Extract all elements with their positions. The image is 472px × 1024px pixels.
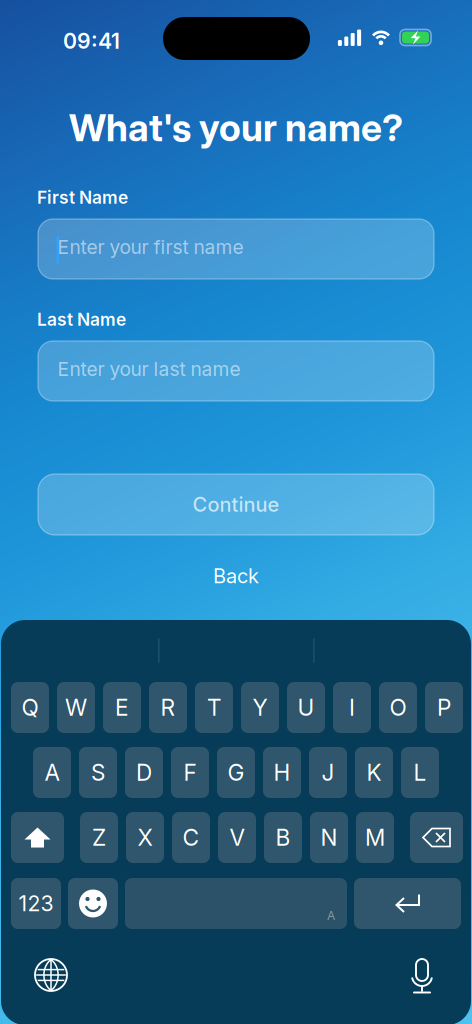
button[interactable]: Dictate	[400, 953, 444, 997]
button[interactable]: V	[218, 812, 256, 863]
button[interactable]: E	[103, 682, 141, 733]
button[interactable]: Emoji	[68, 878, 118, 929]
button[interactable]: Enter your first name	[38, 219, 434, 279]
staticText: L	[413, 759, 426, 786]
button[interactable]: Z	[80, 812, 118, 863]
button[interactable]: B	[264, 812, 302, 863]
button[interactable]: P	[425, 682, 463, 733]
staticText: T	[207, 694, 221, 721]
staticText: S	[91, 759, 105, 786]
staticText: G	[227, 759, 244, 786]
button[interactable]: M	[356, 812, 394, 863]
button[interactable]: 123	[11, 878, 61, 929]
staticText: U	[297, 694, 314, 721]
button[interactable]: Delete	[410, 812, 463, 863]
staticText: What's your name?	[69, 105, 403, 150]
button[interactable]: C	[172, 812, 210, 863]
button[interactable]: space	[125, 878, 347, 929]
button[interactable]: J	[309, 747, 347, 798]
button[interactable]: W	[57, 682, 95, 733]
staticText: O	[389, 694, 406, 721]
button[interactable]: G	[217, 747, 255, 798]
button[interactable]: L	[401, 747, 439, 798]
staticText: F	[183, 759, 196, 786]
staticText: P	[437, 694, 451, 721]
staticText: H	[273, 759, 290, 786]
button[interactable]: K	[355, 747, 393, 798]
staticText: First Name	[37, 187, 128, 208]
staticText: I	[349, 694, 355, 721]
button[interactable]: U	[287, 682, 325, 733]
staticText: B	[275, 824, 290, 851]
staticText: 09:41	[63, 28, 120, 54]
button[interactable]: A	[33, 747, 71, 798]
button[interactable]: D	[125, 747, 163, 798]
staticText: Enter your last name	[57, 357, 240, 381]
button[interactable]: Y	[241, 682, 279, 733]
button[interactable]: Continue	[38, 474, 434, 535]
staticText: Back	[213, 564, 259, 588]
staticText: A	[44, 759, 59, 786]
staticText: K	[366, 759, 381, 786]
staticText: Last Name	[37, 309, 126, 330]
staticText: C	[182, 824, 199, 851]
staticText: 123	[18, 891, 53, 916]
button[interactable]: N	[310, 812, 348, 863]
button[interactable]: S	[79, 747, 117, 798]
staticText: Q	[21, 694, 38, 721]
staticText: N	[320, 824, 337, 851]
staticText: R	[160, 694, 175, 721]
button[interactable]: T	[195, 682, 233, 733]
staticText: D	[136, 759, 152, 786]
staticText: V	[229, 824, 244, 851]
staticText: Enter your first name	[57, 235, 243, 259]
button[interactable]: Next keyboard	[29, 953, 73, 997]
button[interactable]: X	[126, 812, 164, 863]
button[interactable]: Return	[354, 878, 461, 929]
staticText: W	[65, 694, 87, 721]
button[interactable]: Back	[176, 558, 296, 594]
staticText: J	[321, 759, 334, 786]
staticText: M	[365, 824, 385, 851]
button[interactable]: Q	[11, 682, 49, 733]
button[interactable]: Shift	[11, 812, 64, 863]
button[interactable]: H	[263, 747, 301, 798]
button[interactable]: F	[171, 747, 209, 798]
staticText: Y	[252, 694, 267, 721]
button[interactable]: R	[149, 682, 187, 733]
staticText: E	[115, 694, 129, 721]
staticText: A	[327, 908, 335, 923]
button[interactable]: Enter your last name	[38, 341, 434, 401]
staticText: X	[137, 824, 152, 851]
staticText: Continue	[192, 492, 279, 517]
button[interactable]: I	[333, 682, 371, 733]
staticText: Z	[92, 824, 106, 851]
button[interactable]: O	[379, 682, 417, 733]
